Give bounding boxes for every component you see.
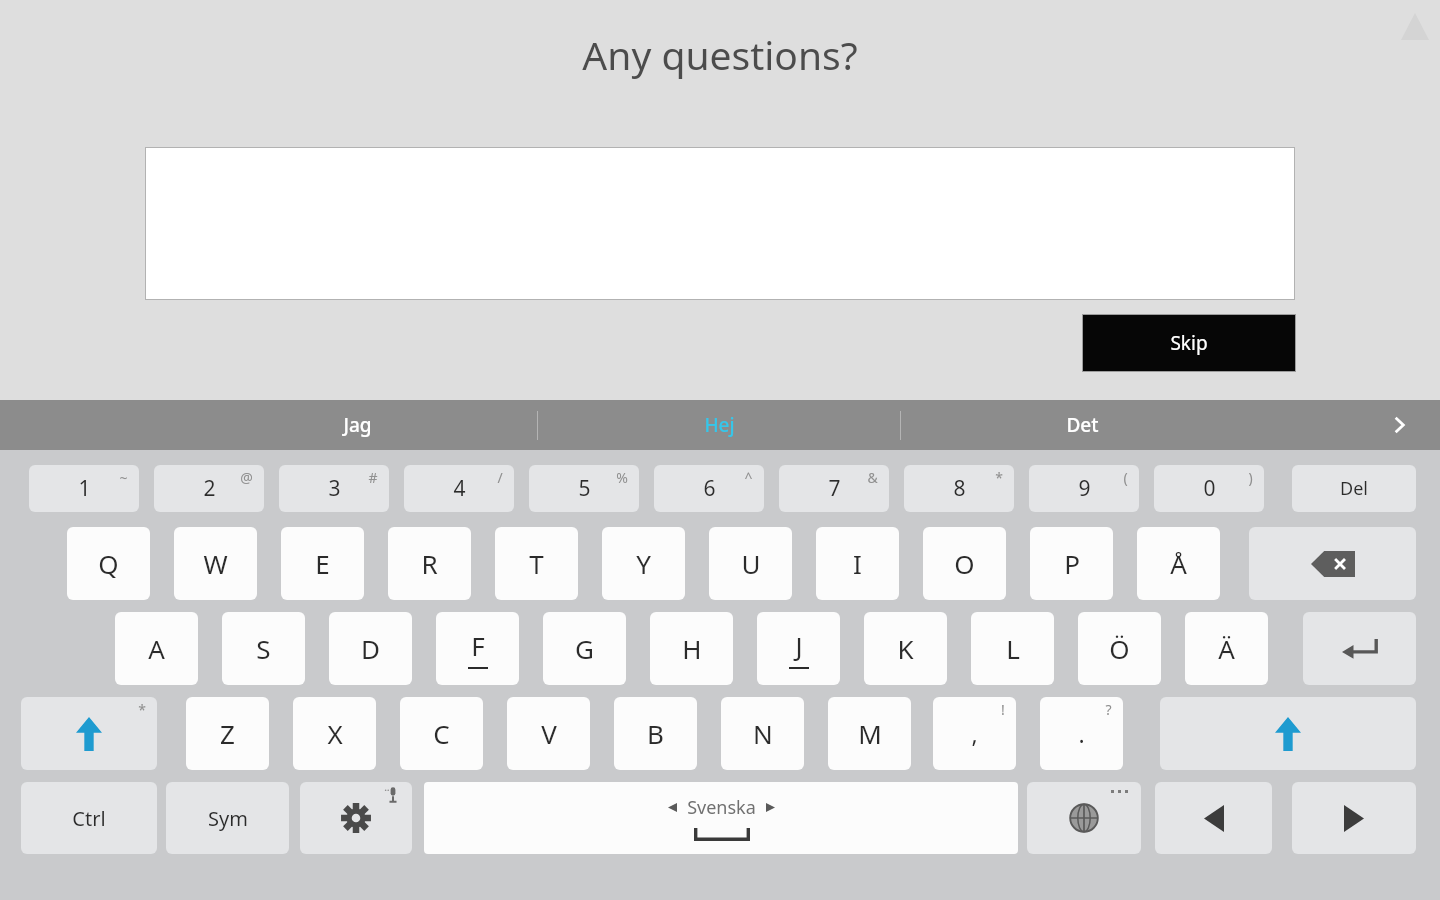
staticText: Y	[636, 546, 651, 581]
staticText: 4	[453, 474, 466, 503]
button[interactable]: Move left	[1155, 782, 1272, 854]
button[interactable]: V	[507, 697, 590, 770]
staticText: T	[529, 546, 544, 581]
button[interactable]: 7	[779, 465, 889, 512]
button[interactable]: E	[281, 527, 364, 600]
button[interactable]: K	[864, 612, 947, 685]
button[interactable]: G	[543, 612, 626, 685]
staticText: D	[361, 631, 380, 666]
button[interactable]: Move right	[1292, 782, 1416, 854]
button[interactable]: 5	[529, 465, 639, 512]
button[interactable]: C	[400, 697, 483, 770]
button[interactable]: Q	[67, 527, 150, 600]
button[interactable]: 6	[654, 465, 764, 512]
button[interactable]: Hej	[538, 400, 900, 450]
button[interactable]: J	[757, 612, 840, 685]
button[interactable]: Change language	[1027, 782, 1141, 854]
button[interactable]: Shift	[21, 697, 157, 770]
staticText: 1	[78, 474, 91, 503]
button[interactable]: Shift	[1160, 697, 1416, 770]
staticText: E	[315, 546, 330, 581]
button[interactable]: Space	[424, 782, 1018, 854]
button[interactable]: D	[329, 612, 412, 685]
staticText: Det	[1066, 412, 1099, 438]
button[interactable]: P	[1030, 527, 1113, 600]
button[interactable]: N	[721, 697, 804, 770]
staticText: Jag	[343, 412, 372, 438]
button[interactable]: ,	[933, 697, 1016, 770]
staticText: Q	[98, 546, 119, 581]
button[interactable]: Det	[901, 400, 1263, 450]
button[interactable]: 0	[1154, 465, 1264, 512]
staticText: ?	[1105, 700, 1112, 719]
staticText: Skip	[1170, 330, 1208, 356]
staticText: J	[795, 628, 803, 663]
staticText: #	[368, 468, 378, 487]
staticText: L	[1006, 631, 1020, 666]
button[interactable]: S	[222, 612, 305, 685]
staticText: A	[148, 631, 165, 666]
button[interactable]: 3	[279, 465, 389, 512]
button[interactable]: Y	[602, 527, 685, 600]
staticText: X	[327, 716, 343, 751]
staticText: Ö	[1109, 631, 1130, 666]
staticText: Ä	[1218, 631, 1235, 666]
button[interactable]: U	[709, 527, 792, 600]
button[interactable]: Ö	[1078, 612, 1161, 685]
button[interactable]: More suggestions	[1368, 400, 1430, 450]
staticText: 5	[578, 474, 591, 503]
button[interactable]: A	[115, 612, 198, 685]
staticText: Hej	[704, 412, 735, 438]
button[interactable]	[145, 147, 1295, 300]
button[interactable]: Ctrl	[21, 782, 157, 854]
button[interactable]: M	[828, 697, 911, 770]
staticText: /	[497, 468, 503, 487]
button[interactable]: 8	[904, 465, 1014, 512]
button[interactable]: O	[923, 527, 1006, 600]
staticText: 7	[828, 474, 841, 503]
button[interactable]: Del	[1292, 465, 1416, 512]
staticText: I	[853, 546, 862, 581]
button[interactable]: Å	[1137, 527, 1220, 600]
staticText: ~	[119, 468, 128, 487]
staticText: Svenska	[687, 795, 756, 820]
button[interactable]: Jag	[176, 400, 538, 450]
staticText: B	[647, 716, 664, 751]
button[interactable]: Sym	[166, 782, 289, 854]
staticText: Any questions?	[582, 28, 858, 81]
staticText: H	[682, 631, 702, 666]
button[interactable]: 1	[29, 465, 139, 512]
button[interactable]: Settings	[300, 782, 412, 854]
staticText: 6	[703, 474, 716, 503]
staticText: N	[753, 716, 773, 751]
staticText: @	[240, 468, 253, 487]
staticText: )	[1248, 468, 1253, 487]
button[interactable]: I	[816, 527, 899, 600]
button[interactable]: T	[495, 527, 578, 600]
button[interactable]: L	[971, 612, 1054, 685]
staticText: !	[1001, 700, 1005, 719]
staticText: (	[1123, 468, 1128, 487]
button[interactable]: Z	[186, 697, 269, 770]
button[interactable]: X	[293, 697, 376, 770]
staticText: U	[741, 546, 761, 581]
button[interactable]: Ä	[1185, 612, 1268, 685]
button[interactable]: 4	[404, 465, 514, 512]
staticText: S	[256, 631, 271, 666]
button[interactable]: 2	[154, 465, 264, 512]
staticText: *	[995, 468, 1003, 487]
button[interactable]: B	[614, 697, 697, 770]
button[interactable]: Backspace	[1249, 527, 1416, 600]
button[interactable]: Skip	[1082, 314, 1296, 372]
button[interactable]: F	[436, 612, 519, 685]
staticText: R	[421, 546, 438, 581]
button[interactable]: .	[1040, 697, 1123, 770]
staticText: 0	[1203, 474, 1216, 503]
button[interactable]: W	[174, 527, 257, 600]
button[interactable]: Enter	[1303, 612, 1416, 685]
button[interactable]: R	[388, 527, 471, 600]
staticText: Sym	[208, 805, 248, 832]
button[interactable]: H	[650, 612, 733, 685]
staticText: Ctrl	[72, 805, 106, 832]
button[interactable]: 9	[1029, 465, 1139, 512]
